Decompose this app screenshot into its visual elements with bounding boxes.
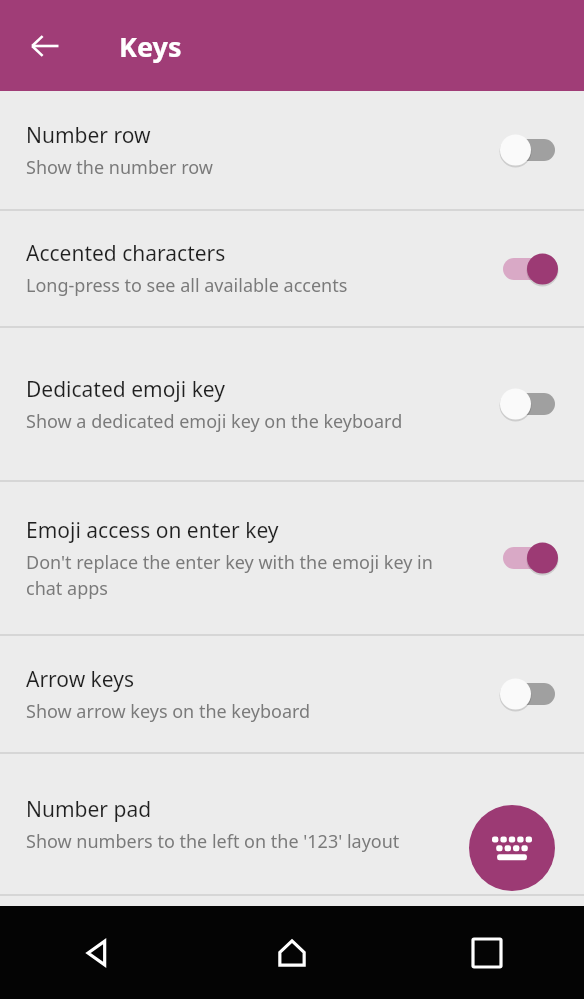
staticText: Emoji access on enter key xyxy=(26,516,279,545)
button[interactable]: Number pad xyxy=(0,754,584,894)
button[interactable]: Number row xyxy=(0,91,584,209)
staticText: Don't replace the enter key with the emo… xyxy=(26,550,451,601)
staticText: Show a dedicated emoji key on the keyboa… xyxy=(26,409,403,434)
button[interactable]: Accented characters xyxy=(0,211,584,326)
button[interactable]: Arrow keys toggle xyxy=(484,636,584,752)
button[interactable]: Accented characters toggle xyxy=(484,211,584,326)
button[interactable]: Emoji access on enter key toggle xyxy=(484,482,584,634)
staticText: Number row xyxy=(26,121,151,150)
staticText: Dedicated emoji key xyxy=(26,375,225,404)
button[interactable]: Back xyxy=(0,906,194,999)
staticText: Show the number row xyxy=(26,155,213,180)
staticText: Show arrow keys on the keyboard xyxy=(26,699,311,724)
button[interactable]: Number row toggle xyxy=(484,91,584,209)
staticText: Number pad xyxy=(26,795,152,824)
button[interactable]: Home xyxy=(194,906,389,999)
staticText: Long-press to see all available accents xyxy=(26,273,348,298)
staticText: Arrow keys xyxy=(26,665,135,694)
button[interactable]: Open keyboard xyxy=(469,805,555,891)
button[interactable]: Emoji access on enter key xyxy=(0,482,584,634)
button[interactable]: Number pad toggle xyxy=(484,754,584,894)
button[interactable]: Recent apps xyxy=(389,906,584,999)
staticText: Accented characters xyxy=(26,239,226,268)
button[interactable]: Back xyxy=(21,22,69,70)
staticText: Keys xyxy=(119,28,182,65)
button[interactable]: Arrow keys xyxy=(0,636,584,752)
button[interactable]: Dedicated emoji key toggle xyxy=(484,328,584,480)
button[interactable]: Dedicated emoji key xyxy=(0,328,584,480)
staticText: Show numbers to the left on the '123' la… xyxy=(26,829,400,854)
